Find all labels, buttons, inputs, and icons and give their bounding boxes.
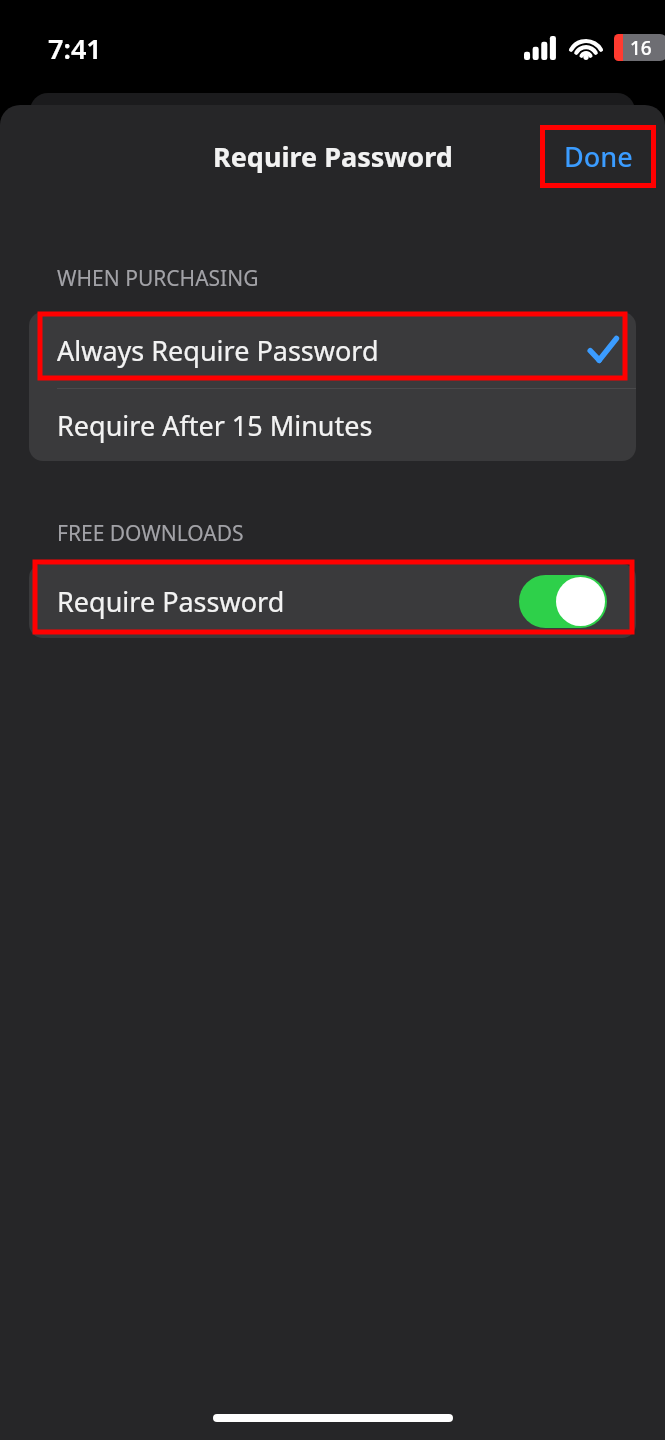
staticText: FREE DOWNLOADS <box>57 519 244 548</box>
other: Require Password toggle, on <box>519 575 607 628</box>
button[interactable]: Always Require Password <box>29 312 636 388</box>
staticText: Done <box>564 138 633 175</box>
button[interactable]: Require After 15 Minutes <box>29 389 636 461</box>
button[interactable]: Require Password <box>29 564 636 638</box>
staticText: Require After 15 Minutes <box>57 407 373 444</box>
staticText: 7:41 <box>48 30 102 67</box>
staticText: WHEN PURCHASING <box>57 264 259 293</box>
button[interactable]: Done <box>541 126 655 187</box>
staticText: Require Password <box>213 138 453 175</box>
staticText: Require Password <box>57 583 285 620</box>
staticText: Always Require Password <box>57 332 379 369</box>
staticText: 16 <box>630 35 652 61</box>
